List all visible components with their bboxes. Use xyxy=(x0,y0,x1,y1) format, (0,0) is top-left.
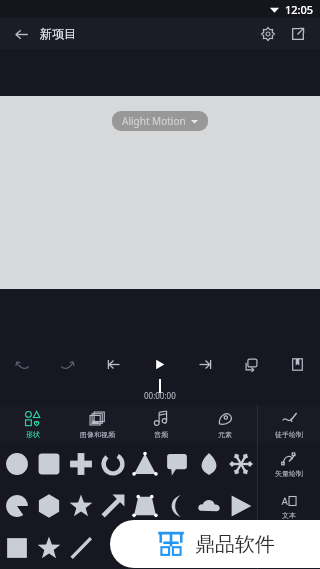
button[interactable]: Play xyxy=(136,349,182,379)
button[interactable]: snow xyxy=(225,443,257,485)
button[interactable]: Loop xyxy=(228,349,274,379)
staticText: 文本 xyxy=(282,511,296,520)
button[interactable]: cloud xyxy=(193,485,225,527)
button[interactable]: 矢量绘制 xyxy=(258,443,320,485)
button[interactable]: pie xyxy=(0,485,33,527)
button[interactable]: Undo xyxy=(0,349,45,379)
staticText: 形状 xyxy=(26,430,40,439)
button[interactable]: Bookmark xyxy=(274,349,320,379)
staticText: Alight Motion xyxy=(122,114,186,128)
staticText: 徒手绘制 xyxy=(275,430,303,439)
button[interactable]: rtri xyxy=(225,485,257,527)
button[interactable]: 图像和视频 xyxy=(65,405,129,443)
button[interactable]: drop xyxy=(193,443,225,485)
button[interactable]: 元素 xyxy=(193,405,257,443)
staticText: 鼎品软件 xyxy=(195,532,275,557)
button[interactable]: Skip to end xyxy=(182,349,228,379)
staticText: 元素 xyxy=(218,430,232,439)
button[interactable]: Alight Motion xyxy=(112,111,208,131)
button[interactable]: Redo xyxy=(45,349,90,379)
staticText: 00:00:00 xyxy=(144,390,176,401)
button[interactable]: arrow xyxy=(97,485,129,527)
staticText: 矢量绘制 xyxy=(275,469,303,478)
button[interactable]: arc xyxy=(97,443,129,485)
staticText: 12:05 xyxy=(285,2,314,17)
button[interactable]: blank xyxy=(193,527,225,569)
button[interactable]: star2 xyxy=(33,527,65,569)
button[interactable]: Skip to start xyxy=(90,349,136,379)
staticText: 音频 xyxy=(154,430,168,439)
button[interactable]: line xyxy=(65,527,97,569)
button[interactable]: blank xyxy=(161,527,193,569)
button[interactable]: square xyxy=(0,527,33,569)
button[interactable]: plus xyxy=(65,443,97,485)
button[interactable]: Export xyxy=(284,20,312,48)
button[interactable]: crescent xyxy=(161,485,193,527)
button[interactable]: 徒手绘制 xyxy=(258,405,320,443)
button[interactable]: trapezoid xyxy=(129,485,161,527)
button[interactable]: 音频 xyxy=(129,405,193,443)
button[interactable]: Settings xyxy=(254,20,282,48)
button[interactable]: blank xyxy=(97,527,129,569)
button[interactable]: blank xyxy=(225,527,257,569)
button[interactable]: 形状 xyxy=(0,405,65,443)
button[interactable]: circle xyxy=(0,443,33,485)
button[interactable]: star xyxy=(65,485,97,527)
button[interactable]: rsquare xyxy=(33,443,65,485)
button[interactable]: blank xyxy=(129,527,161,569)
staticText: 新项目 xyxy=(40,26,76,41)
staticText: 图像和视频 xyxy=(80,430,115,439)
button[interactable]: triangle xyxy=(129,443,161,485)
button[interactable]: hexagon xyxy=(33,485,65,527)
button[interactable]: Back xyxy=(8,21,34,47)
button[interactable]: 文本 xyxy=(258,485,320,527)
button[interactable]: bubble xyxy=(161,443,193,485)
